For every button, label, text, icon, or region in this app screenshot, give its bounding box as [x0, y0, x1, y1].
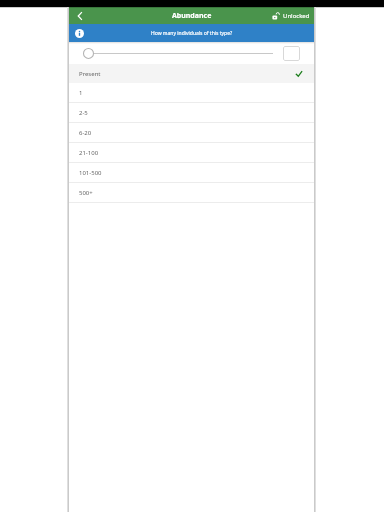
button[interactable]: 21-100 [69, 143, 314, 163]
button[interactable] [69, 7, 91, 24]
staticText: 500+ [79, 189, 93, 197]
button[interactable]: Unlocked [272, 12, 310, 20]
staticText: Present [79, 70, 101, 78]
staticText: 6-20 [79, 129, 92, 137]
staticText: 2-5 [79, 109, 88, 117]
button[interactable]: 6-20 [69, 123, 314, 143]
button[interactable] [283, 46, 300, 61]
button[interactable]: 101-500 [69, 163, 314, 183]
staticText: Unlocked [283, 12, 310, 20]
staticText: 21-100 [79, 149, 99, 157]
button[interactable]: 500+ [69, 183, 314, 203]
staticText: How many individuals of this type? [151, 30, 233, 37]
staticText: 101-500 [79, 169, 102, 177]
button[interactable]: 2-5 [69, 103, 314, 123]
staticText: Abundance [172, 11, 212, 21]
button[interactable]: Present [69, 64, 314, 83]
button[interactable]: 1 [69, 83, 314, 103]
button[interactable]: How many individuals of this type? [69, 24, 314, 42]
staticText: 1 [79, 89, 83, 97]
